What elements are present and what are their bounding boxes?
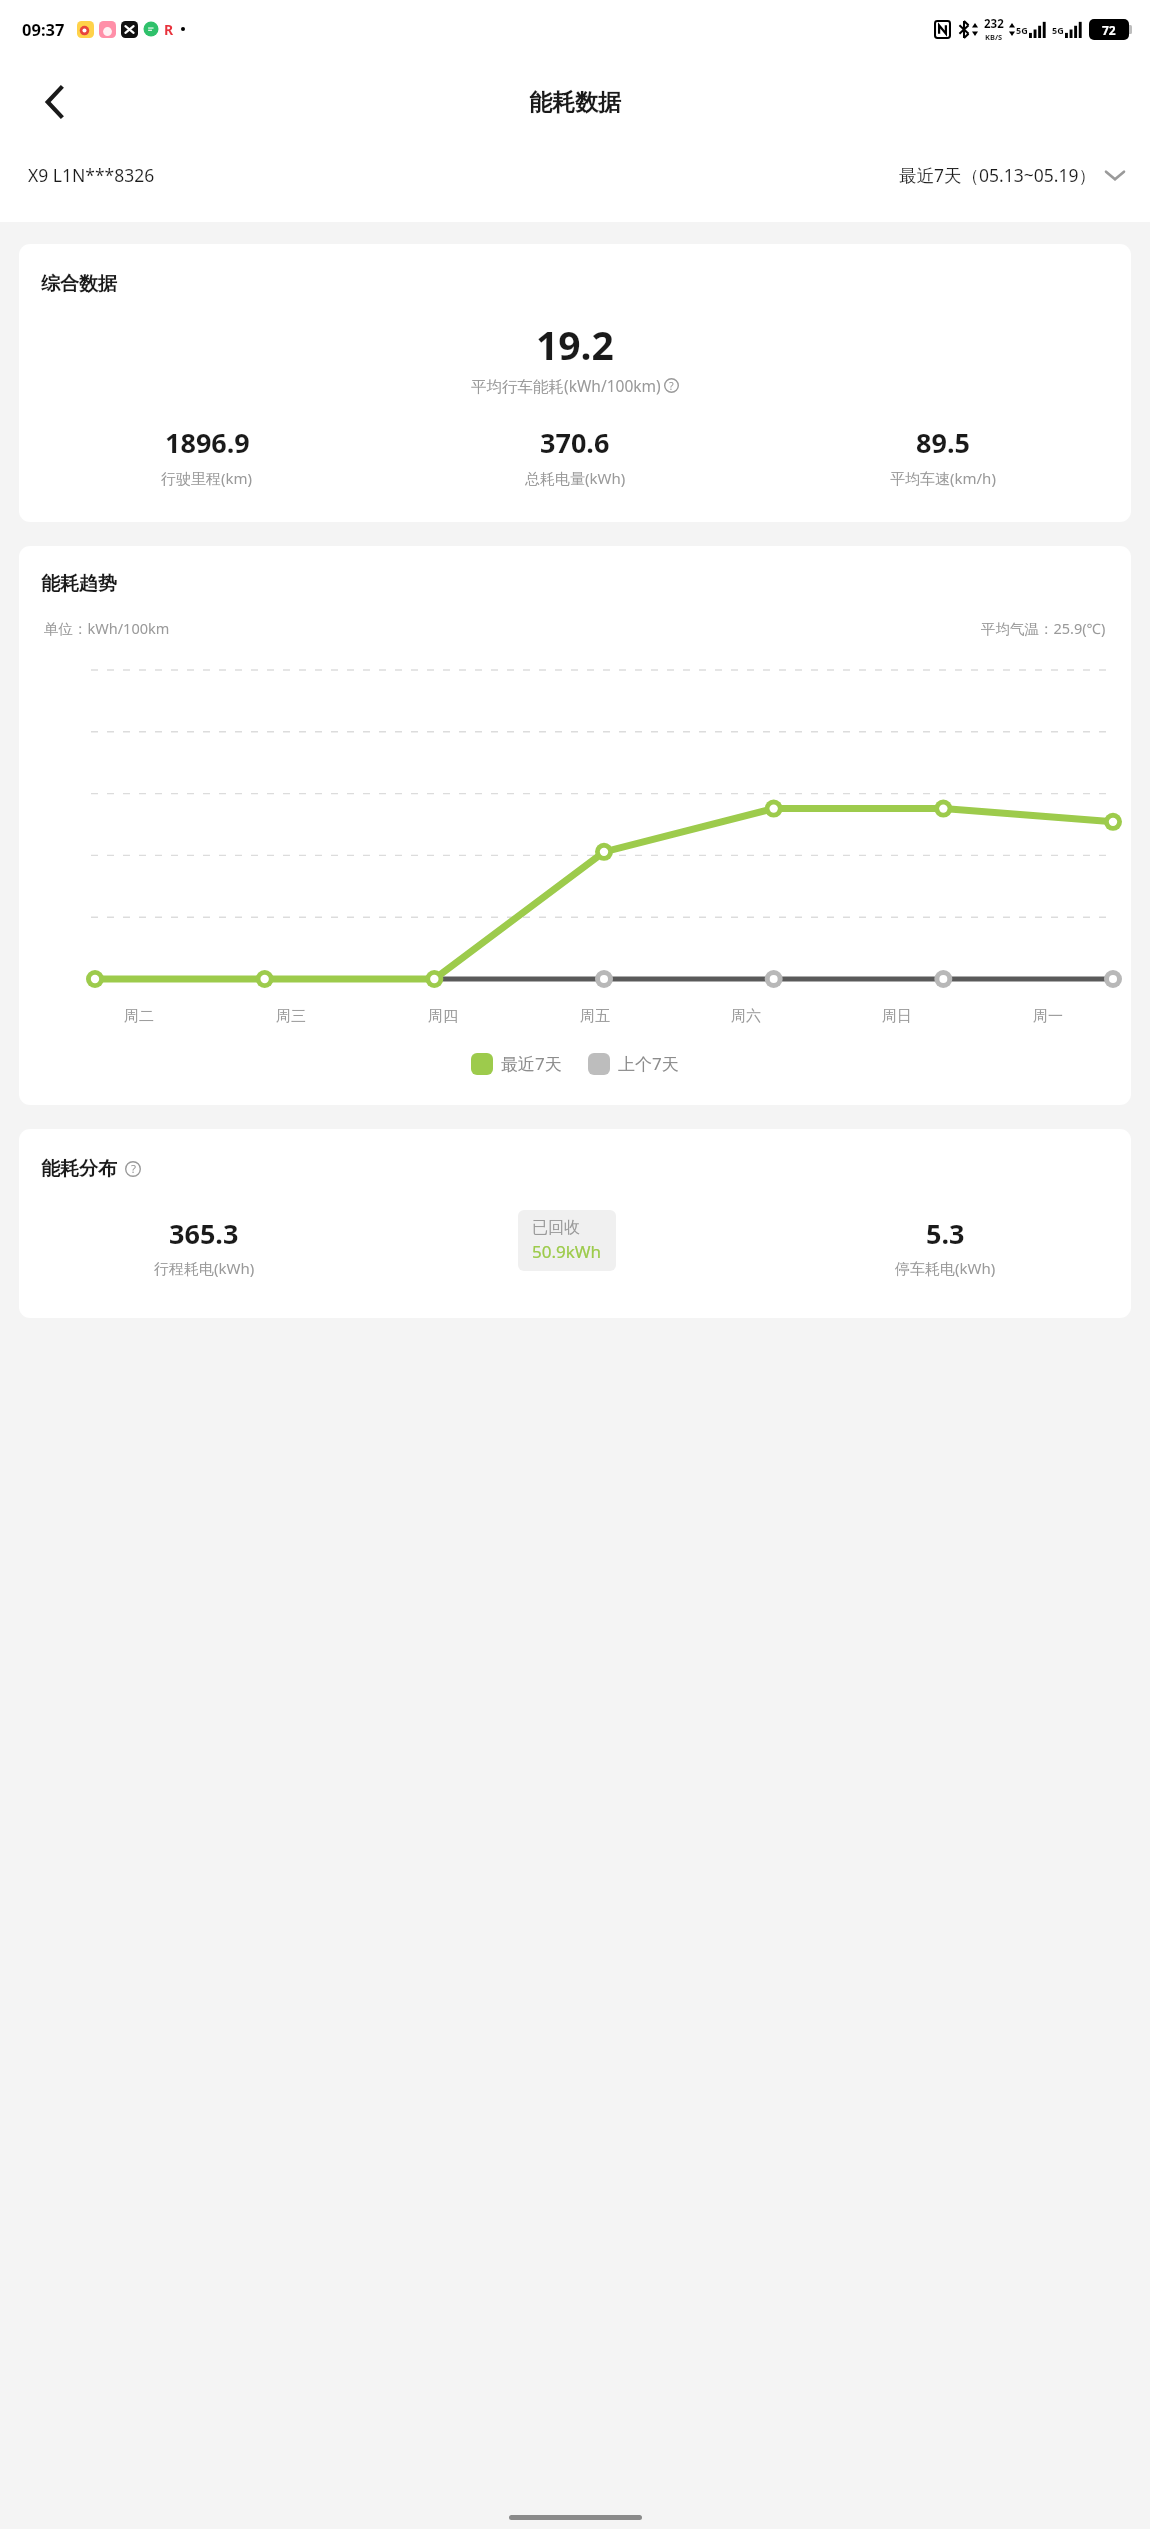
staticText: 50.9kWh xyxy=(532,1240,602,1263)
staticText: 5G xyxy=(1016,24,1028,36)
staticText: 能耗趋势 xyxy=(41,572,117,596)
staticText: 370.6 xyxy=(540,424,610,461)
staticText: 09:37 xyxy=(22,18,65,40)
staticText: 单位：kWh/100km xyxy=(44,618,170,638)
staticText: 1896.9 xyxy=(165,424,250,461)
staticText: 周四 xyxy=(428,1007,458,1026)
staticText: 最近7天 xyxy=(501,1052,562,1075)
staticText: 平均气温：25.9(℃) xyxy=(981,618,1106,638)
button[interactable]: X9 L1N***8326 xyxy=(28,163,155,187)
staticText: 周二 xyxy=(124,1007,154,1026)
staticText: 周一 xyxy=(1033,1007,1063,1026)
staticText: 89.5 xyxy=(916,424,970,461)
staticText: 总耗电量(kWh) xyxy=(525,468,626,488)
staticText: 综合数据 xyxy=(41,272,117,296)
staticText: 能耗数据 xyxy=(529,88,621,117)
staticText: 周五 xyxy=(580,1007,610,1026)
staticText: 已回收 xyxy=(532,1218,580,1238)
staticText: 周六 xyxy=(731,1007,761,1026)
staticText: 平均车速(km/h) xyxy=(890,468,996,488)
staticText: 最近7天（05.13~05.19） xyxy=(899,163,1096,187)
staticText: 上个7天 xyxy=(618,1052,679,1075)
staticText: X9 L1N***8326 xyxy=(28,163,155,187)
staticText: 能耗分布 xyxy=(41,1157,117,1181)
staticText: 停车耗电(kWh) xyxy=(895,1258,996,1278)
staticText: 周三 xyxy=(276,1007,306,1026)
staticText: 19.2 xyxy=(536,318,614,371)
staticText: 72 xyxy=(1102,22,1116,38)
staticText: ? xyxy=(669,378,674,393)
staticText: 周日 xyxy=(882,1007,912,1026)
button[interactable]: 最近7天（05.13~05.19） xyxy=(899,163,1124,187)
staticText: ? xyxy=(131,1161,136,1177)
button[interactable]: 返回 xyxy=(26,74,82,130)
staticText: 365.3 xyxy=(169,1215,239,1252)
staticText: 5.3 xyxy=(926,1215,965,1252)
staticText: 行程耗电(kWh) xyxy=(154,1258,255,1278)
staticText: 平均行车能耗(kWh/100km) xyxy=(471,375,661,396)
staticText: 行驶里程(km) xyxy=(161,468,253,488)
staticText: KB/S xyxy=(985,32,1003,42)
staticText: 5G xyxy=(1052,24,1064,36)
staticText: R xyxy=(164,20,174,39)
staticText: 232 xyxy=(984,16,1004,32)
